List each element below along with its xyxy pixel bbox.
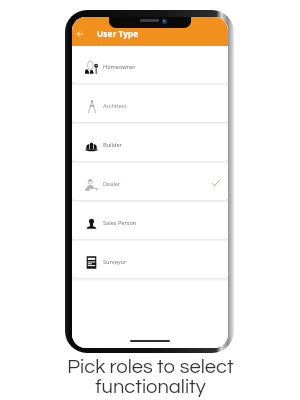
button[interactable]: Homeowner bbox=[74, 46, 226, 83]
button[interactable]: Dealer bbox=[74, 163, 226, 200]
staticText: Builder bbox=[103, 141, 122, 149]
button[interactable]: Architect bbox=[74, 85, 226, 122]
staticText: Pick roles to select functionality bbox=[67, 356, 234, 397]
button[interactable]: Back bbox=[74, 28, 86, 40]
staticText: Homeowner bbox=[103, 63, 136, 71]
button[interactable]: Sales Person bbox=[74, 202, 226, 239]
button[interactable]: Surveyor bbox=[74, 241, 226, 278]
staticText: User Type bbox=[97, 28, 139, 39]
staticText: Surveyor bbox=[103, 258, 127, 266]
staticText: Architect bbox=[103, 102, 127, 110]
button[interactable]: Builder bbox=[74, 124, 226, 161]
staticText: Dealer bbox=[103, 180, 121, 188]
staticText: Sales Person bbox=[103, 219, 137, 227]
